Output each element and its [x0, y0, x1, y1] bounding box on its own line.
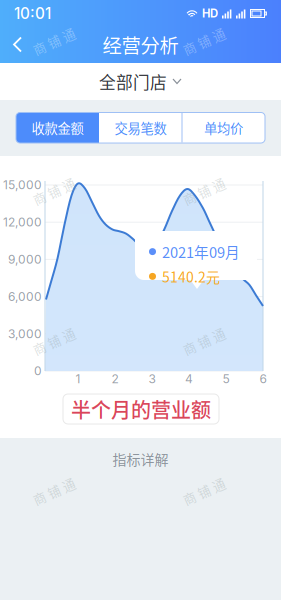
- staticText: 单均价: [204, 118, 243, 137]
- staticText: 3,000: [8, 326, 42, 341]
- staticText: 交易笔数: [114, 118, 166, 137]
- staticText: 商 铺 通: [181, 32, 226, 50]
- staticText: 商 铺 通: [31, 32, 76, 50]
- staticText: 商 铺 通: [31, 182, 76, 200]
- staticText: 商 铺 通: [181, 482, 226, 500]
- staticText: 3: [148, 372, 155, 386]
- staticText: 经营分析: [102, 30, 178, 58]
- staticText: 2: [111, 372, 118, 386]
- staticText: 指标详解: [112, 449, 168, 469]
- button[interactable]: Back: [0, 27, 36, 61]
- staticText: 4: [185, 372, 193, 386]
- staticText: 12,000: [3, 215, 42, 229]
- staticText: 10:01: [14, 4, 51, 23]
- staticText: 商 铺 通: [31, 482, 76, 500]
- staticText: 1: [75, 372, 80, 386]
- staticText: 收款金额: [31, 118, 83, 137]
- staticText: 15,000: [3, 178, 42, 192]
- staticText: 商 铺 通: [181, 332, 226, 350]
- staticText: 5140.2元: [162, 266, 220, 286]
- staticText: 6,000: [8, 289, 42, 304]
- button[interactable]: 交易笔数: [99, 112, 182, 143]
- staticText: 全部门店: [99, 69, 167, 93]
- button[interactable]: 单均价: [182, 112, 265, 143]
- button[interactable]: 收款金额: [16, 112, 99, 143]
- staticText: 2021年09月: [162, 241, 240, 262]
- staticText: 半个月的营业额: [71, 394, 211, 423]
- staticText: 商 铺 通: [181, 182, 226, 200]
- staticText: 商 铺 通: [31, 332, 76, 350]
- staticText: 9,000: [8, 252, 42, 267]
- button[interactable]: 全部门店: [0, 63, 281, 100]
- staticText: HD: [202, 7, 218, 20]
- staticText: 0: [34, 364, 42, 378]
- staticText: 5: [222, 372, 229, 386]
- staticText: 6: [259, 372, 266, 386]
